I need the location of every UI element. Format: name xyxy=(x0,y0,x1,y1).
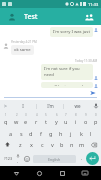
staticText: e xyxy=(24,118,28,125)
button[interactable]: we will be in a good idea t xyxy=(41,82,93,88)
staticText: i xyxy=(75,118,77,125)
button[interactable]: Backspace xyxy=(87,138,101,151)
staticText: 4 xyxy=(36,113,38,117)
button[interactable]: ?123 xyxy=(2,151,14,166)
staticText: t xyxy=(45,118,47,125)
button[interactable]: Voice input xyxy=(90,100,101,112)
button[interactable]: g xyxy=(46,125,56,138)
button[interactable]: x xyxy=(26,138,37,151)
staticText: 1 xyxy=(5,113,7,117)
button[interactable]: Enter xyxy=(86,152,99,165)
button[interactable]: Shift xyxy=(0,138,15,151)
staticText: 11:33 xyxy=(88,2,99,7)
button[interactable]: m xyxy=(77,138,87,151)
button[interactable]: 0 xyxy=(91,112,101,125)
staticText: r xyxy=(35,118,38,125)
button[interactable]: I'm not sure if you need xyxy=(41,64,93,80)
staticText: 2 xyxy=(16,113,18,117)
button[interactable]: Emoji xyxy=(22,151,31,166)
button[interactable]: j xyxy=(66,125,76,138)
button[interactable]: 4 xyxy=(31,112,41,125)
button[interactable]: f xyxy=(36,125,46,138)
staticText: d xyxy=(29,130,33,137)
staticText: 6 xyxy=(56,113,58,117)
staticText: 0 xyxy=(95,113,97,117)
staticText: ok same xyxy=(14,47,31,53)
button[interactable]: 7 xyxy=(61,112,71,125)
button[interactable]: n xyxy=(67,138,77,151)
staticText: b xyxy=(60,141,64,148)
staticText: p xyxy=(94,118,98,125)
staticText: c xyxy=(41,141,44,148)
button[interactable]: we xyxy=(64,100,90,112)
staticText: . xyxy=(81,155,83,162)
button[interactable]: 3 xyxy=(21,112,31,125)
button[interactable]: Add people xyxy=(83,11,95,23)
button[interactable]: a xyxy=(5,125,16,138)
staticText: Yesterday 4:21 PM xyxy=(11,40,37,44)
staticText: m xyxy=(79,141,85,148)
button[interactable]: I xyxy=(10,100,36,112)
staticText: q xyxy=(4,118,8,125)
staticText: 7 xyxy=(65,113,67,117)
button[interactable]: Recents xyxy=(55,166,69,180)
button[interactable]: More suggestions xyxy=(0,100,10,112)
staticText: z xyxy=(19,141,22,148)
button[interactable]: I'm xyxy=(37,100,63,112)
staticText: I'm sorry I was just xyxy=(53,29,90,35)
button[interactable]: . xyxy=(78,151,86,166)
button[interactable]: Contact avatar xyxy=(6,11,17,22)
staticText: I xyxy=(22,103,24,109)
staticText: y xyxy=(55,118,58,125)
button[interactable]: Keyboard xyxy=(78,166,92,180)
staticText: a xyxy=(9,130,13,137)
button[interactable]: 9 xyxy=(81,112,91,125)
staticText: w xyxy=(14,118,19,125)
staticText: x xyxy=(30,141,33,148)
staticText: 3 xyxy=(25,113,27,117)
button[interactable]: z xyxy=(15,138,26,151)
button[interactable]: Comma and voice xyxy=(14,151,22,166)
staticText: n xyxy=(70,141,74,148)
button[interactable]: d xyxy=(26,125,36,138)
button[interactable]: l xyxy=(86,125,96,138)
button[interactable]: English xyxy=(33,155,76,163)
button[interactable]: 6 xyxy=(51,112,61,125)
button[interactable]: Send xyxy=(89,89,97,97)
staticText: l xyxy=(90,130,92,137)
button[interactable]: Home xyxy=(32,166,46,180)
staticText: g xyxy=(49,130,53,137)
staticText: English xyxy=(48,157,61,162)
staticText: u xyxy=(64,118,68,125)
button[interactable]: k xyxy=(76,125,86,138)
button[interactable]: s xyxy=(16,125,26,138)
staticText: we will be in a good idea t xyxy=(44,84,90,86)
staticText: ?123 xyxy=(4,156,13,161)
button[interactable]: v xyxy=(47,138,57,151)
button[interactable]: 8 xyxy=(71,112,81,125)
staticText: Test xyxy=(24,12,38,22)
staticText: v xyxy=(51,141,54,148)
button[interactable]: c xyxy=(37,138,47,151)
button[interactable]: 1 xyxy=(0,112,11,125)
button[interactable]: 5 xyxy=(41,112,51,125)
button[interactable]: I'm sorry I was just xyxy=(50,27,93,37)
button[interactable]: h xyxy=(56,125,66,138)
staticText: 5 xyxy=(45,113,47,117)
staticText: I'm xyxy=(47,103,54,109)
staticText: I'm not sure if you need xyxy=(44,66,90,78)
staticText: o xyxy=(84,118,88,125)
staticText: f xyxy=(40,130,42,137)
button[interactable]: Back xyxy=(9,166,23,180)
staticText: s xyxy=(20,130,23,137)
button[interactable]: b xyxy=(57,138,67,151)
button[interactable]: 2 xyxy=(11,112,21,125)
staticText: , xyxy=(17,158,19,163)
staticText: h xyxy=(59,130,63,137)
staticText: 9 xyxy=(85,113,87,117)
staticText: > xyxy=(4,103,7,110)
button[interactable]: ok same xyxy=(11,45,34,55)
staticText: 8 xyxy=(75,113,77,117)
staticText: k xyxy=(80,130,83,137)
